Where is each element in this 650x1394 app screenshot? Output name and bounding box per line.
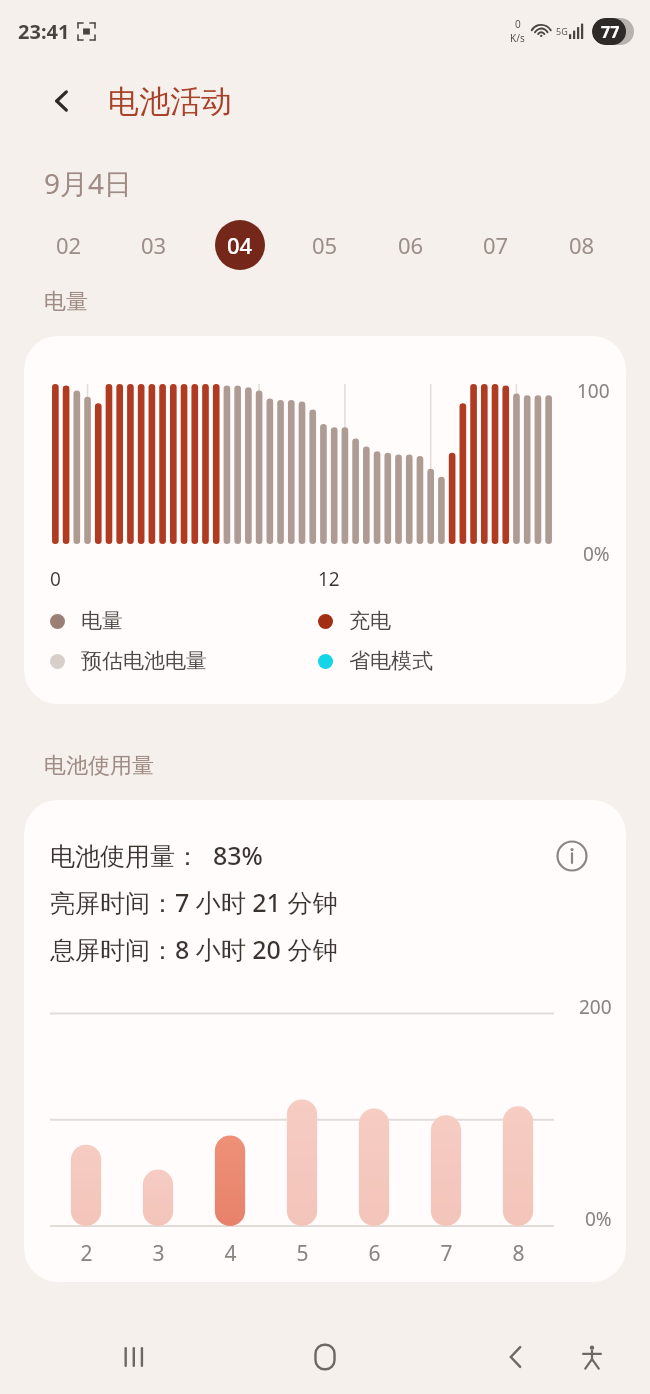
staticText: 03: [141, 230, 167, 260]
staticText: 12: [318, 566, 340, 592]
staticText: 06: [398, 230, 424, 260]
staticText: 0: [50, 566, 61, 592]
button[interactable]: Info: [552, 836, 592, 876]
staticText: 6: [368, 1239, 381, 1268]
staticText: 息屏时间：8 小时 20 分钟: [50, 932, 338, 966]
staticText: 充电: [349, 608, 391, 634]
staticText: 8: [512, 1239, 525, 1268]
staticText: 04: [227, 230, 253, 260]
staticText: 5: [296, 1239, 309, 1268]
staticText: 3: [152, 1239, 165, 1268]
staticText: 0%: [583, 541, 610, 567]
button[interactable]: 100: [24, 336, 626, 704]
button[interactable]: Recents: [96, 1320, 172, 1394]
staticText: 02: [56, 230, 82, 260]
staticText: 电池使用量： 83%: [50, 838, 263, 872]
button[interactable]: 02: [38, 220, 100, 270]
button[interactable]: Back: [40, 79, 84, 123]
staticText: 0: [515, 17, 521, 31]
staticText: 亮屏时间：7 小时 21 分钟: [50, 885, 338, 919]
staticText: 23:41: [18, 18, 70, 45]
staticText: 05: [312, 230, 338, 260]
staticText: 省电模式: [349, 648, 433, 674]
button[interactable]: 03: [123, 220, 185, 270]
staticText: 电量: [44, 288, 88, 316]
staticText: 0%: [585, 1206, 612, 1232]
staticText: 9月4日: [44, 164, 133, 202]
staticText: 电池使用量: [44, 752, 154, 780]
button[interactable]: Back: [478, 1320, 554, 1394]
button[interactable]: Accessibility: [554, 1320, 630, 1394]
staticText: 4: [224, 1239, 237, 1268]
staticText: 100: [577, 378, 610, 404]
staticText: 77: [601, 21, 620, 43]
button[interactable]: Home: [287, 1320, 363, 1394]
button[interactable]: 07: [465, 220, 527, 270]
staticText: 电池活动: [108, 82, 232, 121]
button[interactable]: 05: [294, 220, 356, 270]
button[interactable]: 06: [380, 220, 442, 270]
staticText: 5G: [556, 25, 568, 37]
staticText: 预估电池电量: [81, 648, 207, 674]
staticText: 电量: [81, 608, 123, 634]
staticText: 7: [440, 1239, 453, 1268]
button[interactable]: 04: [209, 220, 271, 270]
button[interactable]: 电池使用量： 83%: [24, 800, 626, 1282]
staticText: 07: [483, 230, 509, 260]
staticText: 200: [579, 994, 612, 1020]
staticText: 08: [569, 230, 595, 260]
staticText: K/s: [510, 31, 525, 45]
button[interactable]: 08: [551, 220, 613, 270]
staticText: 2: [80, 1239, 93, 1268]
